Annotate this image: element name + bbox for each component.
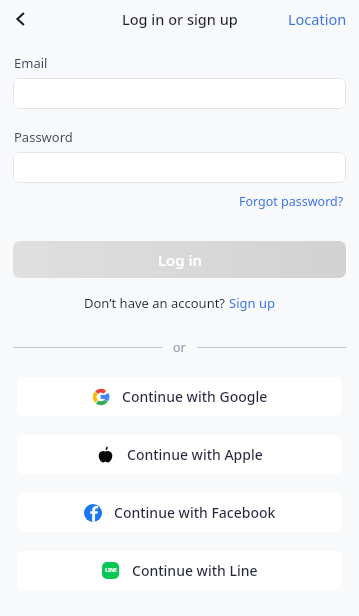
button[interactable]: Sign up bbox=[229, 294, 275, 312]
staticText: Location bbox=[288, 9, 347, 29]
button[interactable]: LINE bbox=[17, 551, 342, 590]
staticText: Log in bbox=[158, 250, 202, 270]
staticText: LINE bbox=[105, 567, 117, 574]
button[interactable]: Forgot password? bbox=[237, 191, 346, 212]
staticText: Email bbox=[14, 54, 48, 72]
button[interactable] bbox=[13, 78, 346, 109]
staticText: Continue with Apple bbox=[127, 445, 263, 464]
staticText: Continue with Google bbox=[122, 387, 268, 406]
button[interactable]: Back bbox=[4, 2, 38, 36]
button[interactable]: Location bbox=[286, 5, 349, 33]
button[interactable]: Continue with Facebook bbox=[17, 493, 342, 532]
button[interactable]: Continue with Apple bbox=[17, 435, 342, 474]
staticText: Log in or sign up bbox=[122, 9, 238, 29]
button[interactable]: Log in bbox=[13, 241, 346, 278]
staticText: or bbox=[173, 339, 186, 356]
button[interactable]: Continue with Google bbox=[17, 377, 342, 416]
staticText: Continue with Facebook bbox=[114, 503, 276, 522]
staticText: Password bbox=[14, 128, 73, 146]
button[interactable] bbox=[13, 152, 346, 183]
staticText: Continue with Line bbox=[132, 561, 258, 580]
staticText: Forgot password? bbox=[239, 193, 344, 210]
staticText: Don’t have an account? bbox=[84, 294, 229, 312]
staticText: Sign up bbox=[229, 294, 275, 312]
